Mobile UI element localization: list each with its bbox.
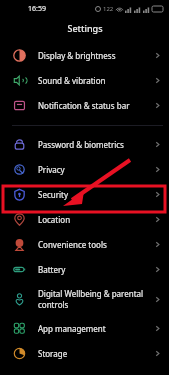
other: Open Sound & vibration <box>154 77 161 84</box>
staticText: Digital Wellbeing & parental controls <box>38 288 154 310</box>
other: Open Security <box>154 191 161 198</box>
other: Open Display & brightness <box>154 52 161 59</box>
staticText: Convenience tools <box>38 239 154 250</box>
button[interactable]: Notification & status bar <box>0 93 169 118</box>
other: Open Location <box>154 216 161 223</box>
staticText: Security <box>38 189 154 200</box>
staticText: 122 <box>103 5 114 13</box>
other: Open Convenience tools <box>154 241 161 248</box>
staticText: Battery <box>38 264 154 275</box>
staticText: App management <box>38 323 154 334</box>
button[interactable]: Storage <box>0 341 169 366</box>
button[interactable]: Battery <box>0 257 169 282</box>
button[interactable]: Display & brightness <box>0 43 169 68</box>
staticText: Privacy <box>38 164 154 175</box>
button[interactable]: Digital Wellbeing & parental controls <box>0 282 169 316</box>
other: Open App management <box>154 325 161 332</box>
staticText: Settings <box>67 22 103 34</box>
staticText: 16:59 <box>28 4 46 14</box>
other: Open Privacy <box>154 166 161 173</box>
other: Open Password & biometrics <box>154 141 161 148</box>
staticText: Notification & status bar <box>38 100 154 111</box>
staticText: Sound & vibration <box>38 75 154 86</box>
button[interactable]: Sound & vibration <box>0 68 169 93</box>
other: Open Digital Wellbeing & parental contro… <box>154 296 161 303</box>
staticText: Password & biometrics <box>38 139 154 150</box>
button[interactable]: Privacy <box>0 157 169 182</box>
other: Open Notification & status bar <box>154 102 161 109</box>
button[interactable]: Password & biometrics <box>0 132 169 157</box>
other: Open Battery <box>154 266 161 273</box>
staticText: Display & brightness <box>38 50 154 61</box>
staticText: Location <box>38 214 154 225</box>
button[interactable]: App management <box>0 316 169 341</box>
button[interactable]: Convenience tools <box>0 232 169 257</box>
button[interactable]: Security <box>0 182 169 207</box>
other: Open Storage <box>154 350 161 357</box>
button[interactable]: Location <box>0 207 169 232</box>
staticText: Storage <box>38 348 154 359</box>
